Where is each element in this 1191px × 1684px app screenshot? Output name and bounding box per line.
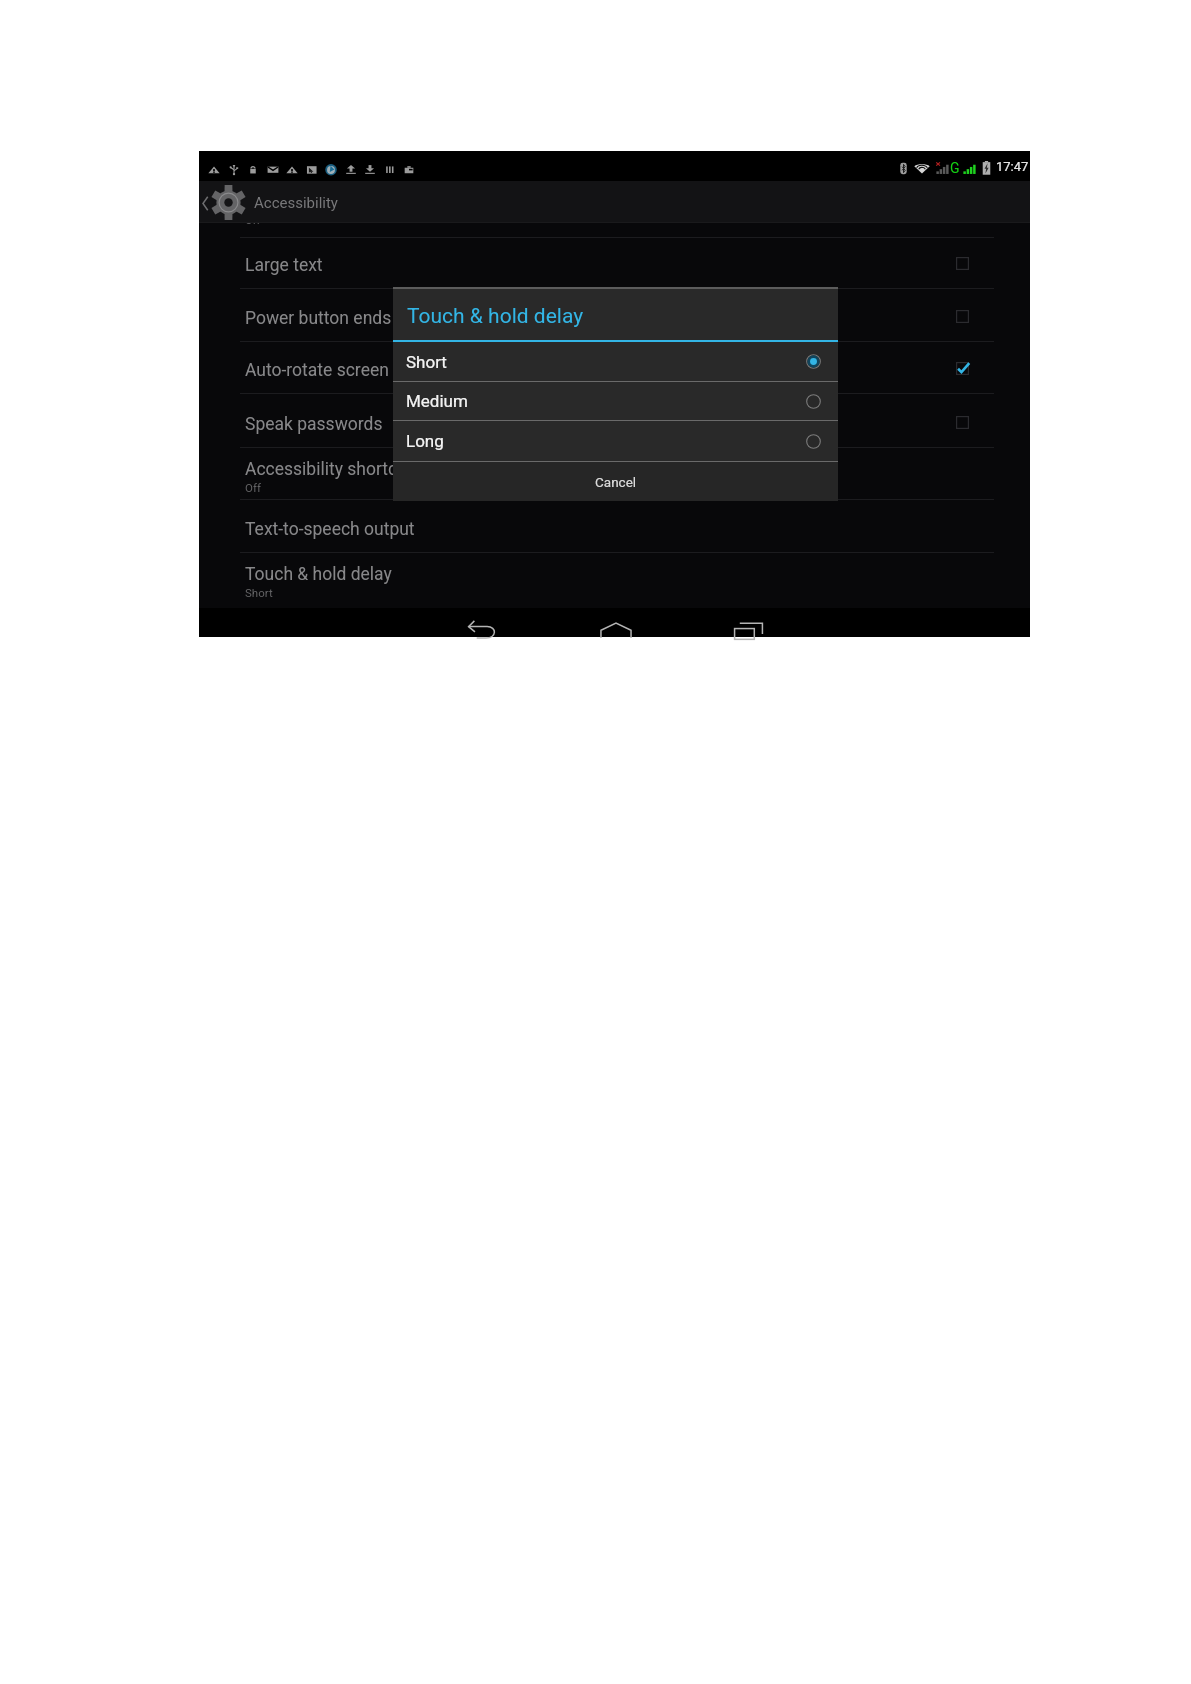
button[interactable]: Long — [393, 421, 838, 461]
button[interactable]: Text-to-speech output — [199, 501, 1030, 553]
button[interactable]: Accessibility shortcut — [199, 448, 1030, 500]
button[interactable]: Power button ends call — [199, 290, 1030, 342]
staticText: Power button ends call — [245, 308, 423, 329]
staticText: Touch & hold delay — [407, 304, 584, 329]
staticText: 17:47 — [996, 159, 1029, 174]
button[interactable]: Large text — [199, 237, 1030, 289]
staticText: Text-to-speech output — [245, 519, 415, 540]
button[interactable]: Speak passwords — [199, 396, 1030, 448]
button[interactable]: Medium — [393, 382, 838, 420]
staticText: Large text — [245, 255, 323, 276]
staticText: Auto-rotate screen — [245, 360, 389, 381]
staticText: Short — [245, 586, 273, 599]
button[interactable]: Auto-rotate screen — [199, 342, 1030, 394]
button[interactable]: Navigate up, Accessibility — [199, 181, 1030, 223]
staticText: Cancel — [595, 474, 637, 490]
button[interactable]: Home — [571, 608, 661, 637]
staticText: Speak passwords — [245, 414, 383, 435]
button[interactable]: Touch & hold delay — [199, 553, 1030, 605]
staticText: Short — [406, 352, 447, 372]
staticText: Long — [406, 431, 444, 451]
button[interactable]: Back — [438, 608, 528, 637]
staticText: Off — [245, 481, 261, 494]
button[interactable]: Short — [393, 342, 838, 381]
staticText: Touch & hold delay — [245, 564, 392, 585]
staticText: G — [950, 160, 960, 176]
staticText: Medium — [406, 391, 468, 411]
button[interactable]: Recent apps — [703, 608, 793, 637]
staticText: Accessibility shortcut — [245, 459, 413, 480]
staticText: Accessibility — [254, 194, 338, 212]
button[interactable]: Cancel — [393, 462, 838, 501]
staticText: Off — [245, 223, 261, 227]
